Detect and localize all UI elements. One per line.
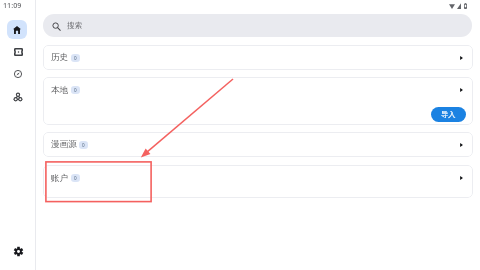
button[interactable]: Library: [7, 42, 29, 61]
button[interactable]: 搜索: [43, 14, 472, 37]
staticText: 搜索: [67, 21, 83, 31]
button[interactable]: Settings: [7, 241, 29, 261]
staticText: 0: [74, 175, 77, 181]
button[interactable]: 账户: [43, 165, 473, 198]
staticText: 漫画源: [51, 139, 77, 150]
staticText: 11:09: [3, 0, 22, 10]
staticText: 导入: [441, 110, 456, 119]
staticText: 账户: [51, 173, 69, 184]
button[interactable]: Plugins: [7, 87, 29, 106]
button[interactable]: Home: [7, 20, 27, 39]
button[interactable]: 历史: [43, 45, 473, 70]
staticText: 本地: [51, 85, 69, 96]
staticText: 0: [74, 87, 77, 93]
button[interactable]: 本地: [43, 77, 473, 125]
staticText: 0: [74, 55, 77, 61]
button[interactable]: Explore: [7, 64, 29, 83]
staticText: 历史: [51, 52, 69, 63]
button[interactable]: 漫画源: [43, 132, 473, 157]
button[interactable]: 导入: [431, 107, 466, 122]
staticText: 0: [82, 142, 85, 148]
